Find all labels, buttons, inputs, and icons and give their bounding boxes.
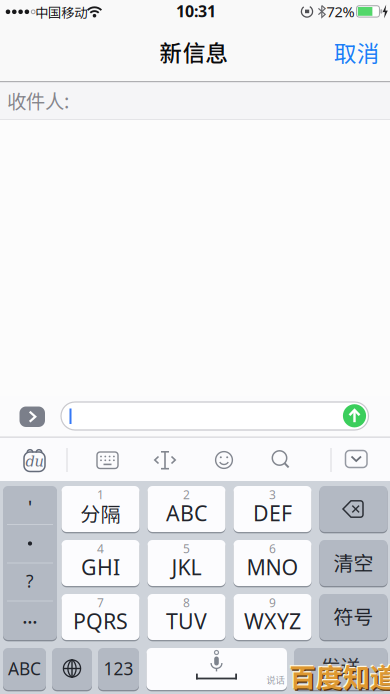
staticText: WXYZ [244,607,301,635]
staticText: 中国移动 [35,2,87,22]
staticText: 3 [269,486,276,502]
staticText: 8 [183,594,190,610]
staticText: GHI [81,553,120,581]
staticText: 百度知道 [288,655,390,694]
staticText: 9 [269,594,276,610]
staticText: 取消 [334,36,380,68]
staticText: 10:31 [176,0,216,22]
staticText: ' [28,495,32,518]
staticText: PQRS [73,607,128,635]
staticText: 4 [97,540,104,556]
staticText: 百度知道 [289,656,390,694]
staticText: JKL [171,553,201,581]
staticText: TUV [166,607,207,635]
staticText: 分隔 [80,498,120,527]
staticText: 新信息 [159,35,228,68]
staticText: 1 [97,486,104,502]
staticText: du [25,453,43,470]
staticText: 说话 [266,673,284,686]
staticText: 6 [269,540,276,556]
staticText: 72% [326,2,354,21]
staticText: 清空 [333,547,373,576]
staticText: 5 [183,540,190,556]
staticText: 发送 [320,651,360,680]
staticText: 123 [103,657,133,680]
staticText: 7 [97,594,104,610]
staticText: DEF [253,499,292,527]
staticText: ? [26,569,34,592]
staticText: MNO [246,553,298,581]
staticText: 百度知道 [290,658,390,694]
staticText: 2 [183,486,190,502]
staticText: ... [22,605,37,628]
staticText: ABC [166,499,207,527]
staticText: 符号 [333,601,373,630]
staticText: ABC [8,657,41,680]
staticText: 收件人: [7,86,69,114]
